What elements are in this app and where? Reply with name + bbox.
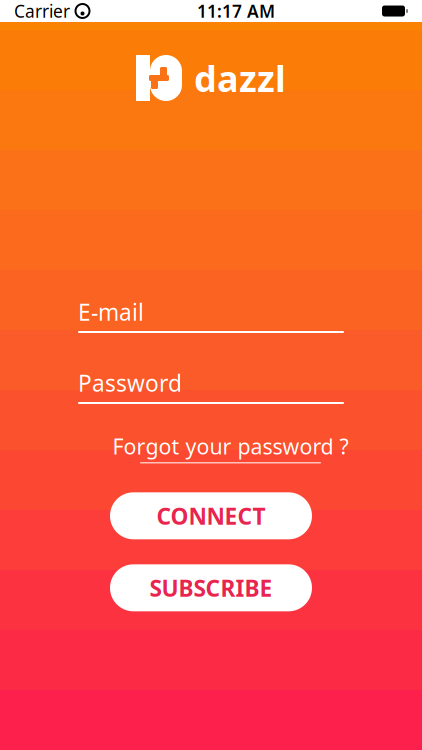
button[interactable]: Password (78, 371, 344, 404)
staticText: dazzl (194, 54, 286, 102)
staticText: 11:17 AM (197, 0, 275, 22)
button[interactable]: CONNECT (110, 492, 312, 539)
button[interactable]: E-mail (78, 300, 344, 333)
button[interactable]: SUBSCRIBE (110, 564, 312, 611)
staticText: Forgot your password ? (112, 432, 348, 460)
staticText: SUBSCRIBE (149, 573, 272, 603)
staticText: CONNECT (156, 501, 265, 531)
staticText: Carrier (14, 0, 70, 22)
button[interactable]: Forgot your password ? (112, 432, 348, 463)
staticText: Password (78, 368, 182, 398)
staticText: E-mail (78, 297, 144, 327)
